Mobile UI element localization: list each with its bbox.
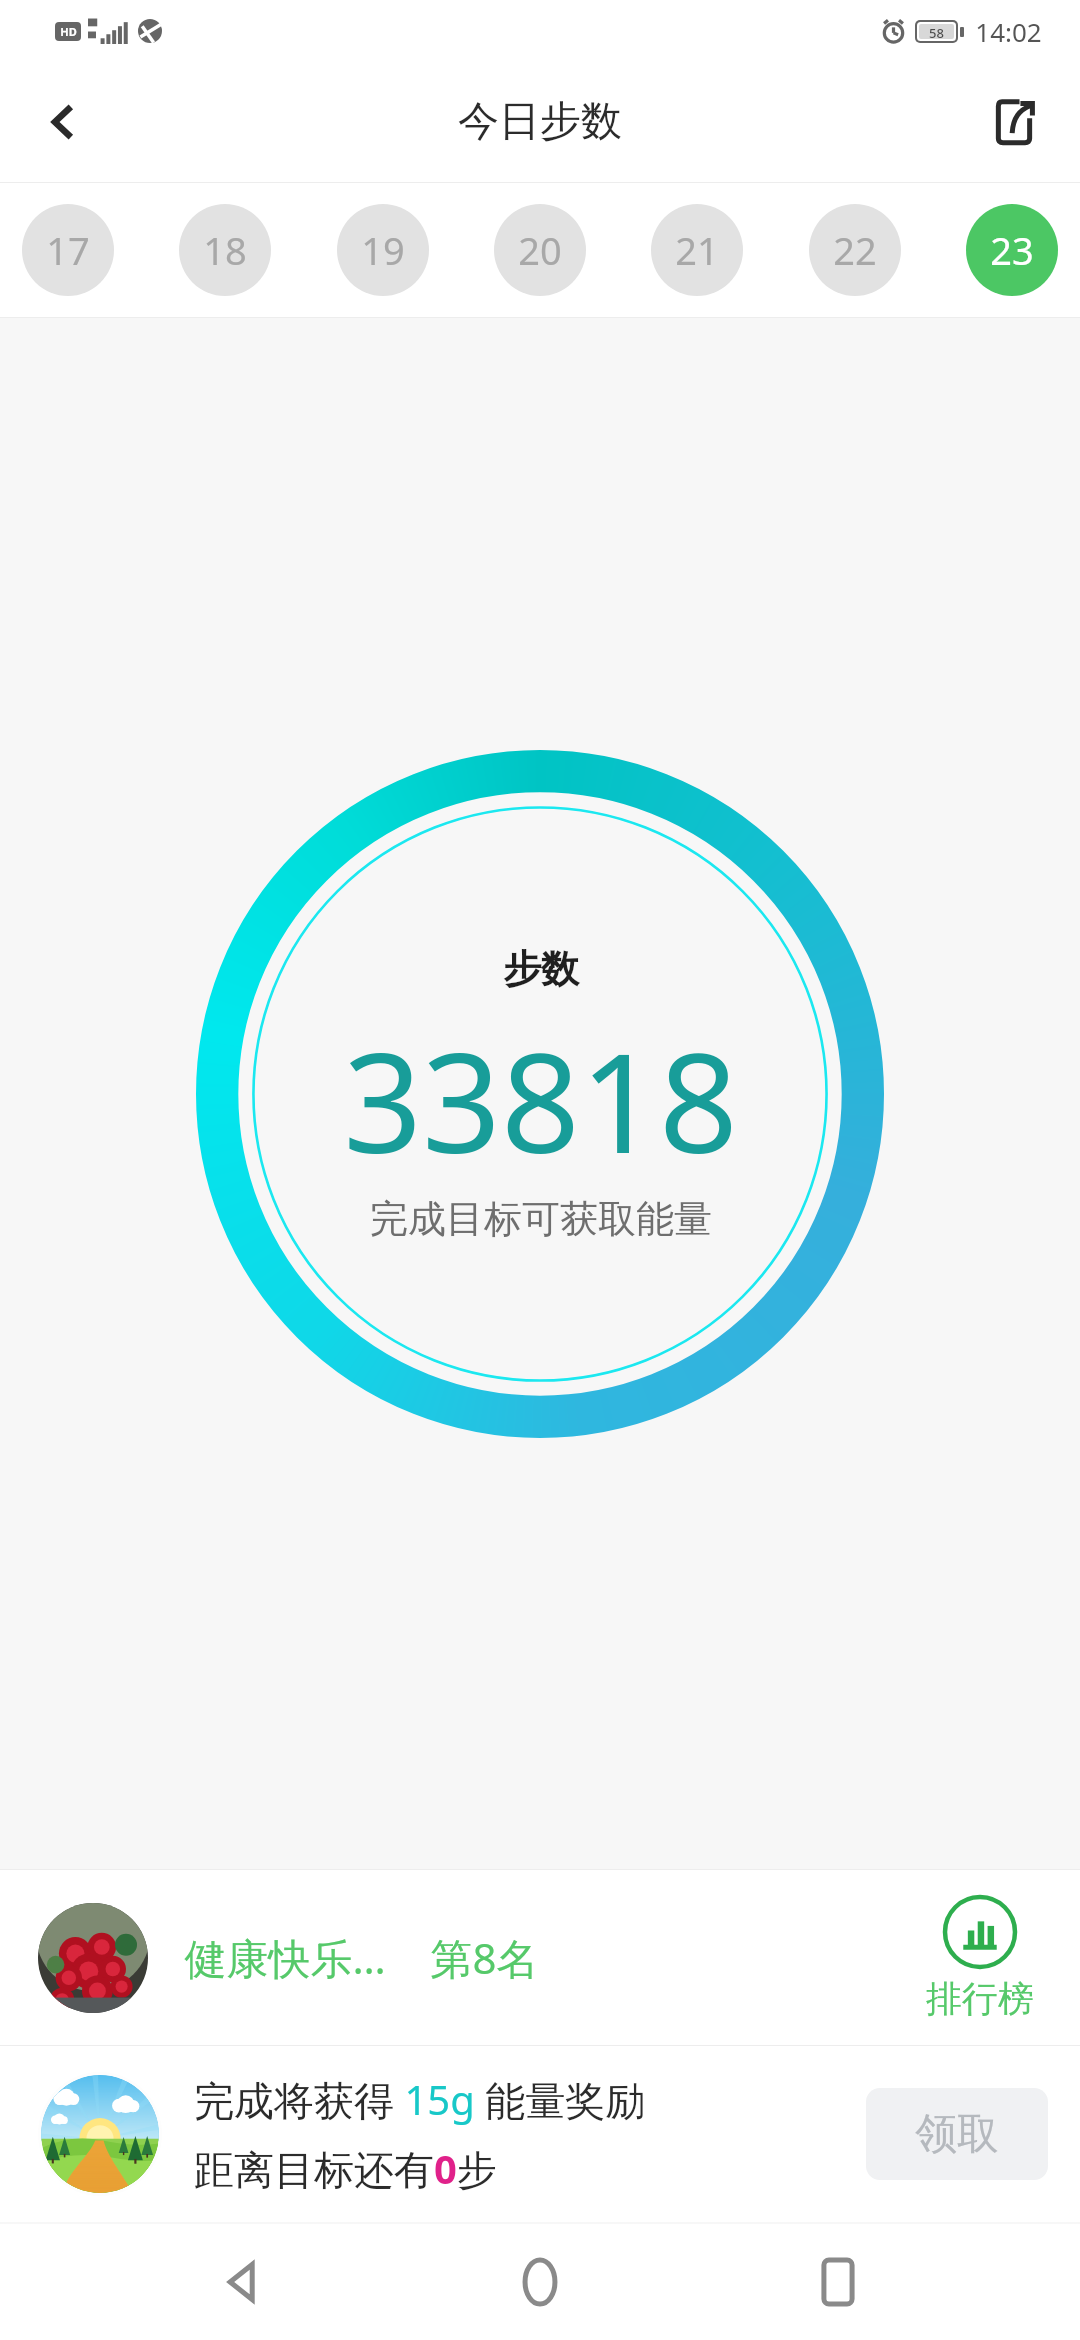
button[interactable]: Recents <box>783 2227 893 2337</box>
staticText: 23 <box>990 224 1034 276</box>
staticText: 22 <box>833 224 877 276</box>
button[interactable]: 领取 <box>866 2088 1048 2180</box>
button[interactable]: 健康快乐… <box>0 1870 1080 2045</box>
button[interactable]: 20 <box>494 204 586 296</box>
staticText: 距离目标还有0步 <box>194 2141 497 2196</box>
button[interactable]: Home <box>485 2227 595 2337</box>
staticText: 17 <box>46 224 90 276</box>
staticText: 20 <box>518 224 562 276</box>
staticText: 完成将获得 15g 能量奖励 <box>194 2072 646 2127</box>
button[interactable]: 18 <box>179 204 271 296</box>
button[interactable]: 22 <box>809 204 901 296</box>
staticText: 14:02 <box>975 14 1042 49</box>
staticText: 领取 <box>915 2108 999 2161</box>
button[interactable]: 19 <box>337 204 429 296</box>
staticText: 完成目标可获取能量 <box>370 1195 712 1243</box>
button[interactable]: Share <box>970 78 1058 166</box>
button[interactable]: 21 <box>651 204 743 296</box>
staticText: 步数 <box>503 945 579 993</box>
staticText: 今日步数 <box>458 96 622 148</box>
button[interactable]: 23 <box>966 204 1058 296</box>
button[interactable]: 完成将获得 15g 能量奖励 <box>0 2046 1080 2222</box>
staticText: 58 <box>929 24 944 39</box>
staticText: 健康快乐… <box>184 1929 386 1986</box>
staticText: HD <box>60 24 77 39</box>
button[interactable]: 17 <box>22 204 114 296</box>
staticText: 18 <box>203 224 247 276</box>
button[interactable]: Back <box>188 2227 298 2337</box>
staticText: 21 <box>675 224 719 276</box>
button[interactable]: Back <box>20 78 108 166</box>
staticText: 排行榜 <box>926 1976 1034 2021</box>
staticText: 19 <box>361 224 405 276</box>
staticText: 第8名 <box>430 1929 539 1986</box>
button[interactable]: 排行榜 <box>910 1888 1050 2027</box>
staticText: 33818 <box>343 1005 738 1193</box>
